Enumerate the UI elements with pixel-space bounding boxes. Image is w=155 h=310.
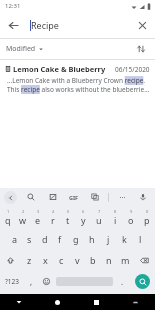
staticText: e xyxy=(35,214,41,226)
staticText: , xyxy=(30,276,33,287)
staticText: ...Lemon Cake with a Blueberry Crown rec… xyxy=(7,76,150,94)
button[interactable]: z xyxy=(21,250,37,270)
button[interactable]: n xyxy=(101,250,117,270)
staticText: Lemon Cake & Blueberry xyxy=(13,64,113,74)
button[interactable]: . xyxy=(115,270,130,292)
button[interactable]: Keyboard xyxy=(116,294,155,310)
staticText: x xyxy=(43,254,48,266)
staticText: 8 xyxy=(114,209,117,214)
button[interactable]: Home xyxy=(38,294,77,310)
staticText: r xyxy=(51,214,55,226)
button[interactable]: ?123 xyxy=(0,270,24,292)
button[interactable]: Translate xyxy=(87,189,103,205)
button[interactable]: Voice input xyxy=(135,189,151,205)
staticText: k xyxy=(122,233,127,245)
button[interactable]: More options xyxy=(114,189,130,205)
staticText: j xyxy=(107,233,110,245)
button[interactable]: f xyxy=(52,228,68,250)
staticText: c xyxy=(59,254,64,266)
staticText: y xyxy=(81,214,86,226)
button[interactable]: l xyxy=(132,228,148,250)
button[interactable]: Lemon Cake & Blueberry xyxy=(0,60,155,98)
button[interactable]: 9 xyxy=(123,206,139,228)
staticText: t xyxy=(66,214,70,226)
staticText: a xyxy=(12,233,18,245)
button[interactable]: x xyxy=(37,250,53,270)
staticText: u xyxy=(96,214,102,226)
staticText: 5 xyxy=(67,209,70,214)
staticText: . xyxy=(121,276,124,287)
button[interactable]: Sort xyxy=(133,41,149,57)
button[interactable]: Shift xyxy=(0,250,21,270)
staticText: o xyxy=(128,214,134,226)
button[interactable]: 6 xyxy=(75,206,91,228)
button[interactable]: m xyxy=(117,250,133,270)
staticText: Modified xyxy=(6,44,36,54)
staticText: 2 xyxy=(22,209,25,214)
button[interactable]: v xyxy=(69,250,85,270)
staticText: p xyxy=(144,214,150,226)
button[interactable]: Back xyxy=(0,294,38,310)
staticText: m xyxy=(121,254,130,266)
button[interactable]: 0 xyxy=(139,206,155,228)
staticText: 3 xyxy=(37,209,40,214)
staticText: Recipe xyxy=(31,19,59,31)
button[interactable]: 3 xyxy=(30,206,45,228)
button[interactable]: 7 xyxy=(91,206,107,228)
staticText: 06/15/2020 xyxy=(115,65,150,74)
button[interactable]: d xyxy=(37,228,52,250)
button[interactable]: Sticker xyxy=(45,189,61,205)
staticText: i xyxy=(114,214,117,226)
staticText: b xyxy=(90,254,96,266)
staticText: f xyxy=(58,233,62,245)
button[interactable]: g xyxy=(68,228,84,250)
button[interactable]: j xyxy=(100,228,116,250)
staticText: z xyxy=(27,254,32,266)
staticText: 6 xyxy=(82,209,85,214)
button[interactable]: Search xyxy=(23,189,39,205)
staticText: s xyxy=(27,233,32,245)
button[interactable]: GIF xyxy=(66,189,82,205)
button[interactable]: b xyxy=(85,250,101,270)
button[interactable]: 1 xyxy=(0,206,15,228)
button[interactable]: Search xyxy=(135,274,150,289)
staticText: GIF xyxy=(69,194,79,201)
button[interactable]: Recents xyxy=(77,294,116,310)
button[interactable]: 5 xyxy=(60,206,75,228)
staticText: h xyxy=(89,233,95,245)
staticText: v xyxy=(75,254,80,266)
button[interactable]: k xyxy=(116,228,132,250)
staticText: q xyxy=(5,214,11,226)
button[interactable]: Back xyxy=(0,12,26,38)
button[interactable]: Emoji xyxy=(39,270,54,292)
staticText: g xyxy=(73,233,79,245)
staticText: n xyxy=(106,254,112,266)
button[interactable]: 4 xyxy=(45,206,60,228)
staticText: ?123 xyxy=(5,277,19,286)
button[interactable]: , xyxy=(24,270,39,292)
button[interactable]: s xyxy=(22,228,37,250)
staticText: 12:31 xyxy=(5,2,21,10)
staticText: w xyxy=(19,214,27,226)
button[interactable]: Clear xyxy=(129,12,155,38)
button[interactable]: c xyxy=(53,250,69,270)
button[interactable]: a xyxy=(7,228,22,250)
button[interactable]: 8 xyxy=(107,206,123,228)
button[interactable]: Modified xyxy=(6,44,44,54)
staticText: 1 xyxy=(7,209,10,214)
staticText: d xyxy=(42,233,48,245)
button[interactable]: Expand xyxy=(4,191,17,204)
staticText: 4 xyxy=(52,209,55,214)
staticText: 0 xyxy=(146,209,149,214)
staticText: l xyxy=(139,233,142,245)
staticText: 7 xyxy=(98,209,101,214)
button[interactable]: h xyxy=(84,228,100,250)
button[interactable]: 2 xyxy=(15,206,30,228)
button[interactable]: Backspace xyxy=(133,250,155,270)
staticText: 9 xyxy=(130,209,133,214)
